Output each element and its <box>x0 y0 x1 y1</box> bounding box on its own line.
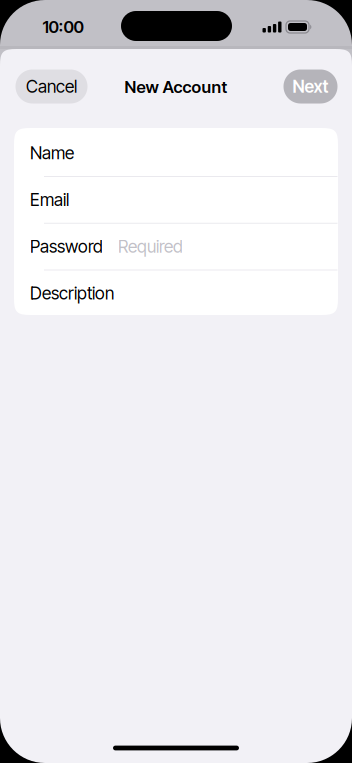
button[interactable]: Cancel <box>15 69 87 103</box>
staticText: 10:00 <box>42 17 83 37</box>
staticText: New Account <box>124 77 227 97</box>
staticText: Next <box>292 76 328 97</box>
staticText: Required <box>118 236 183 257</box>
staticText: Description <box>30 283 114 304</box>
button[interactable]: Password <box>14 223 338 270</box>
button[interactable]: Next <box>283 69 337 103</box>
staticText: Cancel <box>26 76 77 97</box>
button[interactable]: Description <box>14 270 338 317</box>
button[interactable]: Email <box>14 176 338 223</box>
button[interactable]: Name <box>14 129 338 176</box>
staticText: Name <box>30 142 74 163</box>
staticText: Password <box>30 236 103 257</box>
staticText: Email <box>30 189 69 210</box>
